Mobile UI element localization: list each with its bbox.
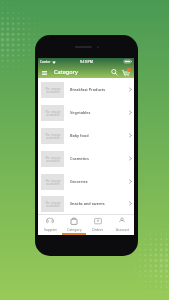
staticText: Category xyxy=(67,227,82,232)
staticText: Account xyxy=(116,227,129,232)
staticText: Vegetables xyxy=(70,110,91,115)
staticText: No image available xyxy=(45,178,61,186)
button[interactable]: No image available xyxy=(38,147,134,170)
button[interactable]: Support xyxy=(38,214,62,235)
staticText: 9:13 PM xyxy=(80,59,93,64)
staticText: Cosmetics xyxy=(70,156,89,161)
button[interactable]: Menu xyxy=(40,68,49,77)
staticText: Carrier xyxy=(40,60,51,64)
staticText: Snacks and sweets xyxy=(70,201,105,206)
staticText: Groceries xyxy=(70,179,88,184)
staticText: No image available xyxy=(45,200,61,208)
button[interactable]: Category xyxy=(62,214,86,235)
button[interactable]: No image available xyxy=(38,78,134,101)
button[interactable]: Cart xyxy=(120,67,131,78)
button[interactable]: Search xyxy=(109,67,119,77)
button[interactable]: No image available xyxy=(38,170,134,193)
staticText: Category xyxy=(54,68,78,76)
staticText: No image available xyxy=(45,86,61,94)
button[interactable]: No image available xyxy=(38,101,134,124)
staticText: No image available xyxy=(45,155,61,163)
staticText: No image available xyxy=(45,132,61,140)
button[interactable]: Orders xyxy=(86,214,110,235)
button[interactable]: No image available xyxy=(38,124,134,147)
staticText: Baby food xyxy=(70,133,89,138)
staticText: Orders xyxy=(92,227,104,232)
button[interactable]: Account xyxy=(110,214,134,235)
staticText: No image available xyxy=(45,109,61,117)
staticText: Breakfast Products xyxy=(70,87,106,92)
button[interactable]: No image available xyxy=(38,193,134,214)
staticText: Support xyxy=(44,227,57,232)
